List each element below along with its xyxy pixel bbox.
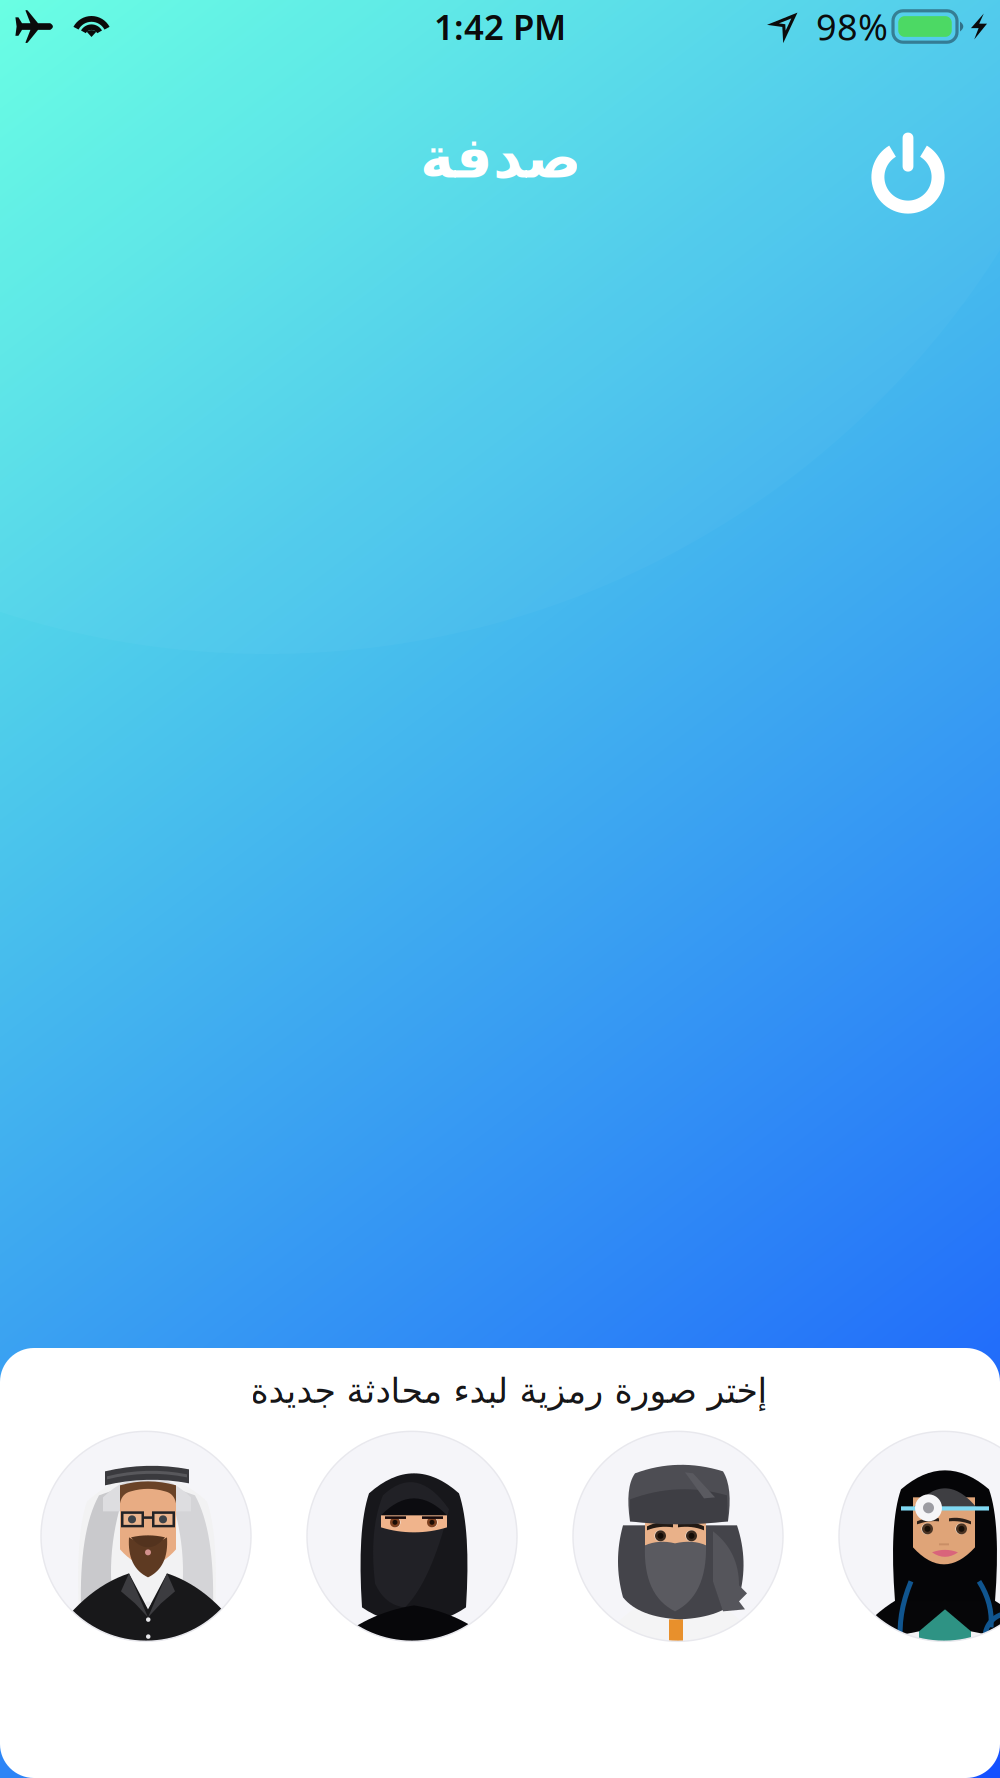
button[interactable]: Power off [870, 53, 1000, 221]
staticText: 1:42 PM [434, 3, 566, 49]
button[interactable]: Start chat as woman in niqab [307, 1431, 517, 1641]
staticText: 98% [816, 3, 888, 50]
button[interactable]: Start chat as Saudi man [41, 1431, 251, 1641]
staticText: صدفة [419, 125, 580, 190]
staticText: إختر صورة رمزية لبدء محادثة جديدة [250, 1371, 767, 1410]
button[interactable]: Start chat as man in turban [573, 1431, 783, 1641]
button[interactable]: Start chat as woman doctor [839, 1431, 1000, 1641]
